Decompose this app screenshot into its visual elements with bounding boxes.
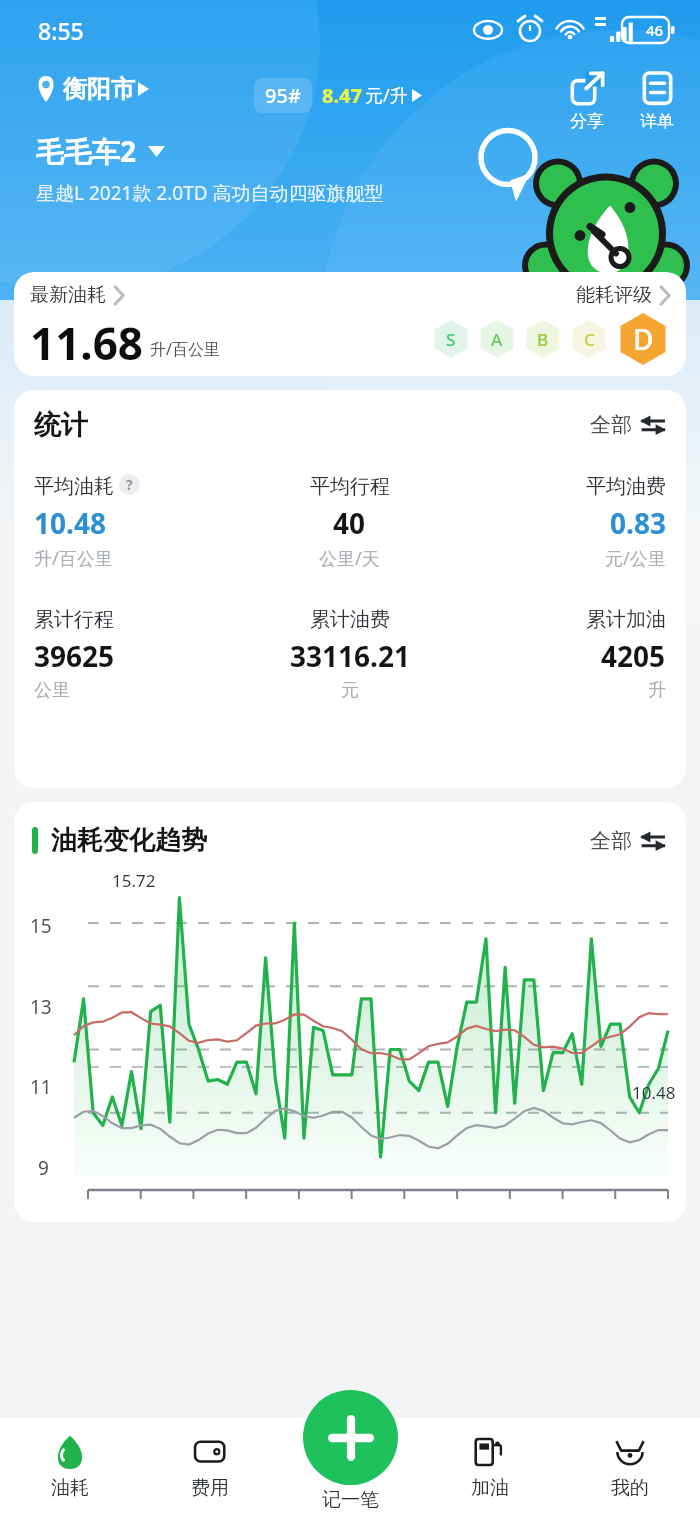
staticText: 4205 xyxy=(601,637,666,675)
button[interactable]: 毛毛车2 xyxy=(36,132,165,170)
staticText: 0.83 xyxy=(610,504,666,542)
button[interactable]: 加油 xyxy=(420,1418,560,1516)
staticText: 15.72 xyxy=(112,869,156,892)
staticText: B xyxy=(537,328,549,351)
staticText: 详单 xyxy=(640,111,674,132)
button[interactable]: 最新油耗 xyxy=(30,283,124,307)
button[interactable]: 平均油耗 xyxy=(34,474,244,571)
staticText: 平均油费 xyxy=(586,474,666,499)
staticText: 能耗评级 xyxy=(576,283,652,307)
staticText: 油耗 xyxy=(51,1476,89,1500)
staticText: 升/百公里 xyxy=(34,546,113,571)
staticText: 记一笔 xyxy=(322,1488,379,1512)
other: 切换 xyxy=(640,415,666,435)
staticText: 毛毛车2 xyxy=(36,132,137,170)
staticText: 40 xyxy=(333,504,366,542)
button[interactable]: 详单 xyxy=(640,72,674,132)
button[interactable]: 分享 xyxy=(570,72,604,132)
staticText: 46 xyxy=(646,20,664,40)
staticText: 8.47 xyxy=(322,82,362,109)
staticText: 油耗变化趋势 xyxy=(51,824,207,857)
staticText: 95# xyxy=(265,82,301,109)
staticText: ? xyxy=(126,475,133,494)
staticText: 最新油耗 xyxy=(30,283,106,307)
button[interactable]: 衡阳市 xyxy=(36,74,149,104)
staticText: 元/公里 xyxy=(605,546,666,571)
staticText: 平均油耗 xyxy=(34,474,114,499)
button[interactable]: 我的 xyxy=(560,1418,700,1516)
other: 切换 xyxy=(640,831,666,851)
staticText: 费用 xyxy=(191,1476,229,1500)
button[interactable]: 全部 xyxy=(590,412,666,438)
staticText: 8:55 xyxy=(38,15,84,46)
staticText: 加油 xyxy=(471,1476,509,1500)
staticText: 公里/天 xyxy=(319,546,380,571)
staticText: 公里 xyxy=(34,679,70,702)
staticText: 升/百公里 xyxy=(150,338,220,360)
staticText: 元 xyxy=(341,679,359,702)
staticText: 平均行程 xyxy=(310,474,390,499)
staticText: 升 xyxy=(648,679,666,702)
staticText: 15 xyxy=(30,913,52,939)
staticText: 全部 xyxy=(590,828,632,854)
staticText: 39625 xyxy=(34,637,115,675)
staticText: 累计行程 xyxy=(34,607,114,632)
staticText: C xyxy=(584,328,595,351)
staticText: 33116.21 xyxy=(290,637,410,675)
staticText: S xyxy=(446,328,456,351)
staticText: D xyxy=(633,320,654,358)
button[interactable]: 平均油费 xyxy=(455,474,666,571)
button[interactable]: 能耗评级 xyxy=(576,283,670,307)
staticText: 13 xyxy=(30,994,52,1020)
button[interactable]: 累计加油 xyxy=(455,607,666,702)
button[interactable]: 费用 xyxy=(140,1418,280,1516)
other: 记一笔 xyxy=(303,1390,398,1485)
button[interactable]: 全部 xyxy=(590,828,666,854)
button[interactable]: 95# xyxy=(254,78,422,113)
staticText: 元/升 xyxy=(365,83,408,108)
staticText: 11 xyxy=(30,1074,52,1100)
staticText: 10.48 xyxy=(632,1081,676,1104)
staticText: 统计 xyxy=(34,408,88,442)
staticText: 我的 xyxy=(611,1476,649,1500)
staticText: 10.48 xyxy=(34,504,106,542)
staticText: 全部 xyxy=(590,412,632,438)
button[interactable]: 累计行程 xyxy=(34,607,244,702)
staticText: 累计油费 xyxy=(310,607,390,632)
button[interactable]: 油耗 xyxy=(0,1418,140,1516)
button[interactable]: 记一笔 xyxy=(303,1390,398,1512)
staticText: 累计加油 xyxy=(586,607,666,632)
staticText: A xyxy=(491,328,503,351)
button[interactable]: 平均行程 xyxy=(244,474,455,571)
staticText: 9 xyxy=(38,1155,49,1181)
staticText: 衡阳市 xyxy=(63,74,135,104)
button[interactable]: 累计油费 xyxy=(244,607,455,702)
staticText: 星越L 2021款 2.0TD 高功自动四驱旗舰型 xyxy=(36,180,384,206)
staticText: 11.68 xyxy=(30,313,144,365)
staticText: 分享 xyxy=(570,111,604,132)
